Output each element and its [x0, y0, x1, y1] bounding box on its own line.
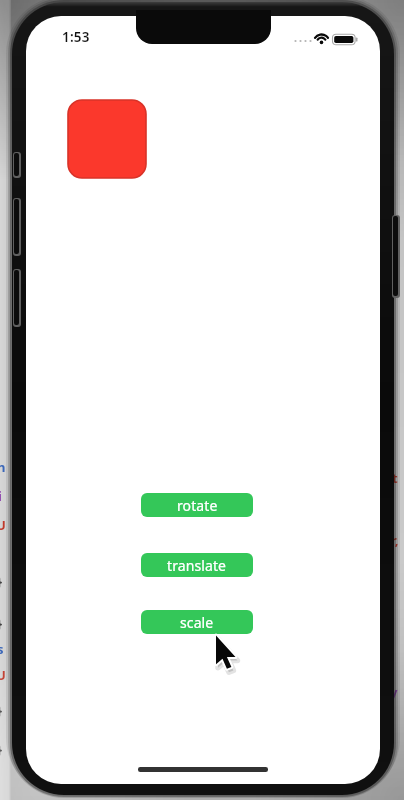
staticText: U [0, 666, 6, 684]
button[interactable]: scale [141, 610, 253, 634]
button[interactable]: rotate [141, 493, 253, 517]
staticText: translate [167, 556, 227, 575]
staticText: } [0, 740, 3, 758]
button[interactable]: translate [141, 553, 253, 577]
staticText: s [0, 640, 4, 658]
staticText: scale [180, 613, 214, 632]
staticText: } [0, 614, 3, 632]
staticText: } [0, 701, 3, 719]
staticText: r, [391, 531, 399, 549]
staticText: t [392, 469, 398, 487]
staticText: n [0, 458, 6, 476]
staticText: i [0, 487, 2, 505]
staticText: rotate [177, 496, 218, 515]
staticText: U [0, 516, 6, 534]
staticText: } [0, 572, 3, 590]
staticText: y [390, 683, 398, 701]
staticText: 1:53 [62, 28, 90, 46]
